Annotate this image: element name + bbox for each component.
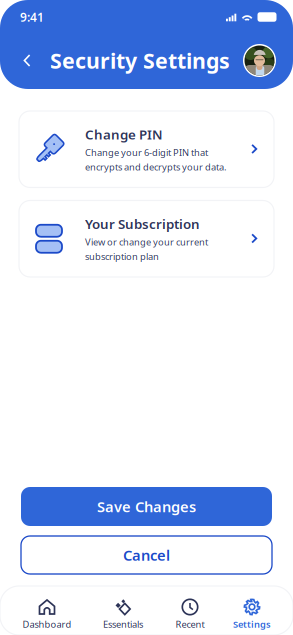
staticText: View or change your current bbox=[85, 236, 208, 248]
staticText: Security Settings bbox=[50, 46, 230, 75]
button[interactable]: Your Subscription bbox=[19, 200, 274, 277]
button[interactable]: Change PIN bbox=[19, 111, 274, 187]
button[interactable]: Back bbox=[15, 46, 39, 74]
staticText: Change your 6-digit PIN that bbox=[85, 146, 208, 159]
button[interactable]: Profile bbox=[243, 44, 276, 77]
staticText: Change PIN bbox=[85, 125, 163, 143]
staticText: Dashboard bbox=[22, 618, 71, 630]
staticText: 9:41 bbox=[20, 9, 44, 25]
button[interactable]: Settings bbox=[233, 599, 271, 630]
button[interactable]: Cancel bbox=[21, 536, 272, 574]
staticText: Settings bbox=[233, 618, 271, 630]
staticText: Save Changes bbox=[97, 497, 196, 516]
staticText: encrypts and decrypts your data. bbox=[85, 161, 227, 173]
button[interactable]: Save Changes bbox=[21, 487, 272, 526]
staticText: Your Subscription bbox=[85, 215, 200, 233]
button[interactable]: Recent bbox=[175, 599, 204, 630]
staticText: subscription plan bbox=[85, 250, 159, 262]
staticText: Recent bbox=[175, 618, 204, 630]
staticText: Cancel bbox=[123, 545, 170, 565]
button[interactable]: Dashboard bbox=[22, 599, 71, 630]
button[interactable]: Essentials bbox=[103, 599, 143, 630]
staticText: Essentials bbox=[103, 618, 143, 630]
